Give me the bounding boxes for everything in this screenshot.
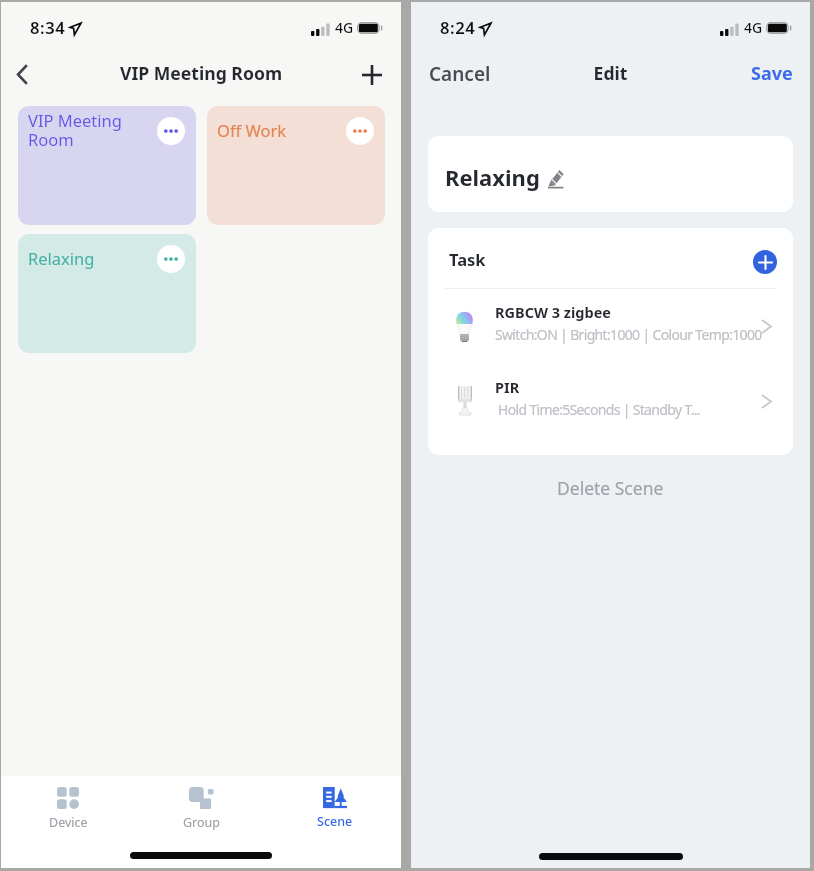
button[interactable]: RGBCW 3 zigbee [428,290,793,367]
staticText: 4G [744,18,763,37]
staticText: Relaxing [445,162,540,192]
staticText: Hold Time:5Seconds | Standby T... [495,400,793,419]
staticText: 4G [335,18,354,37]
button[interactable]: Relaxing [428,136,793,212]
button[interactable]: Add task [753,250,777,274]
button[interactable]: Back [2,54,44,96]
staticText: Group [183,814,220,831]
button[interactable]: More options [346,117,374,145]
button[interactable]: Off Work [207,106,385,225]
button[interactable]: Relaxing [18,234,196,353]
staticText: Switch:ON | Bright:1000 | Colour Temp:10… [495,325,793,344]
button[interactable]: Scene [268,776,401,838]
staticText: 8:34 [30,16,66,39]
button[interactable]: PIR [428,365,793,442]
staticText: Device [49,814,88,831]
staticText: VIP Meeting Room [28,109,144,151]
button[interactable]: More options [157,245,185,273]
staticText: Task [449,248,486,270]
staticText: Scene [317,813,353,830]
button[interactable]: VIP Meeting Room [18,106,196,225]
staticText: 8:24 [440,16,476,39]
staticText: Delete Scene [557,476,664,500]
staticText: VIP Meeting Room [1,61,401,85]
button[interactable]: Device [1,776,135,838]
button[interactable]: Add scene [351,54,393,96]
staticText: Cancel [429,61,491,87]
staticText: Off Work [217,119,333,141]
staticText: Save [751,61,793,86]
staticText: Edit [411,61,810,85]
button[interactable]: Cancel [421,55,499,93]
staticText: RGBCW 3 zigbee [495,302,611,322]
button[interactable]: Group [135,776,268,838]
button[interactable]: Save [743,54,801,92]
button[interactable]: More options [157,117,185,145]
staticText: PIR [495,377,520,397]
button[interactable]: Delete Scene [411,471,810,505]
staticText: Relaxing [28,247,144,269]
